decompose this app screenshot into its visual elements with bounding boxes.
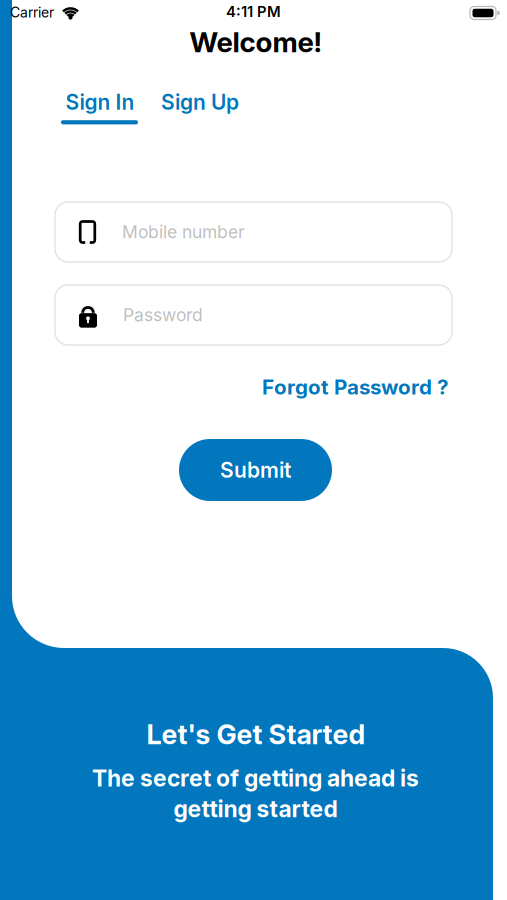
staticText: Submit <box>220 457 291 483</box>
staticText: Sign In <box>65 89 134 115</box>
staticText: getting started <box>173 795 337 823</box>
button[interactable]: Password <box>55 285 452 345</box>
button[interactable]: Submit <box>179 439 332 501</box>
staticText: Sign Up <box>161 89 239 115</box>
staticText: Password <box>123 304 203 326</box>
staticText: Welcome! <box>189 25 321 59</box>
button[interactable]: Sign Up <box>154 84 246 120</box>
staticText: Let's Get Started <box>146 718 365 751</box>
staticText: The secret of getting ahead is <box>92 764 419 792</box>
staticText: 4:11 PM <box>226 2 281 20</box>
button[interactable]: Sign In <box>54 84 146 120</box>
staticText: Mobile number <box>122 221 245 243</box>
button[interactable]: Forgot Password ? <box>262 374 449 399</box>
button[interactable]: Mobile number <box>55 202 452 262</box>
staticText: Carrier <box>10 4 54 21</box>
staticText: Forgot Password ? <box>262 374 449 399</box>
